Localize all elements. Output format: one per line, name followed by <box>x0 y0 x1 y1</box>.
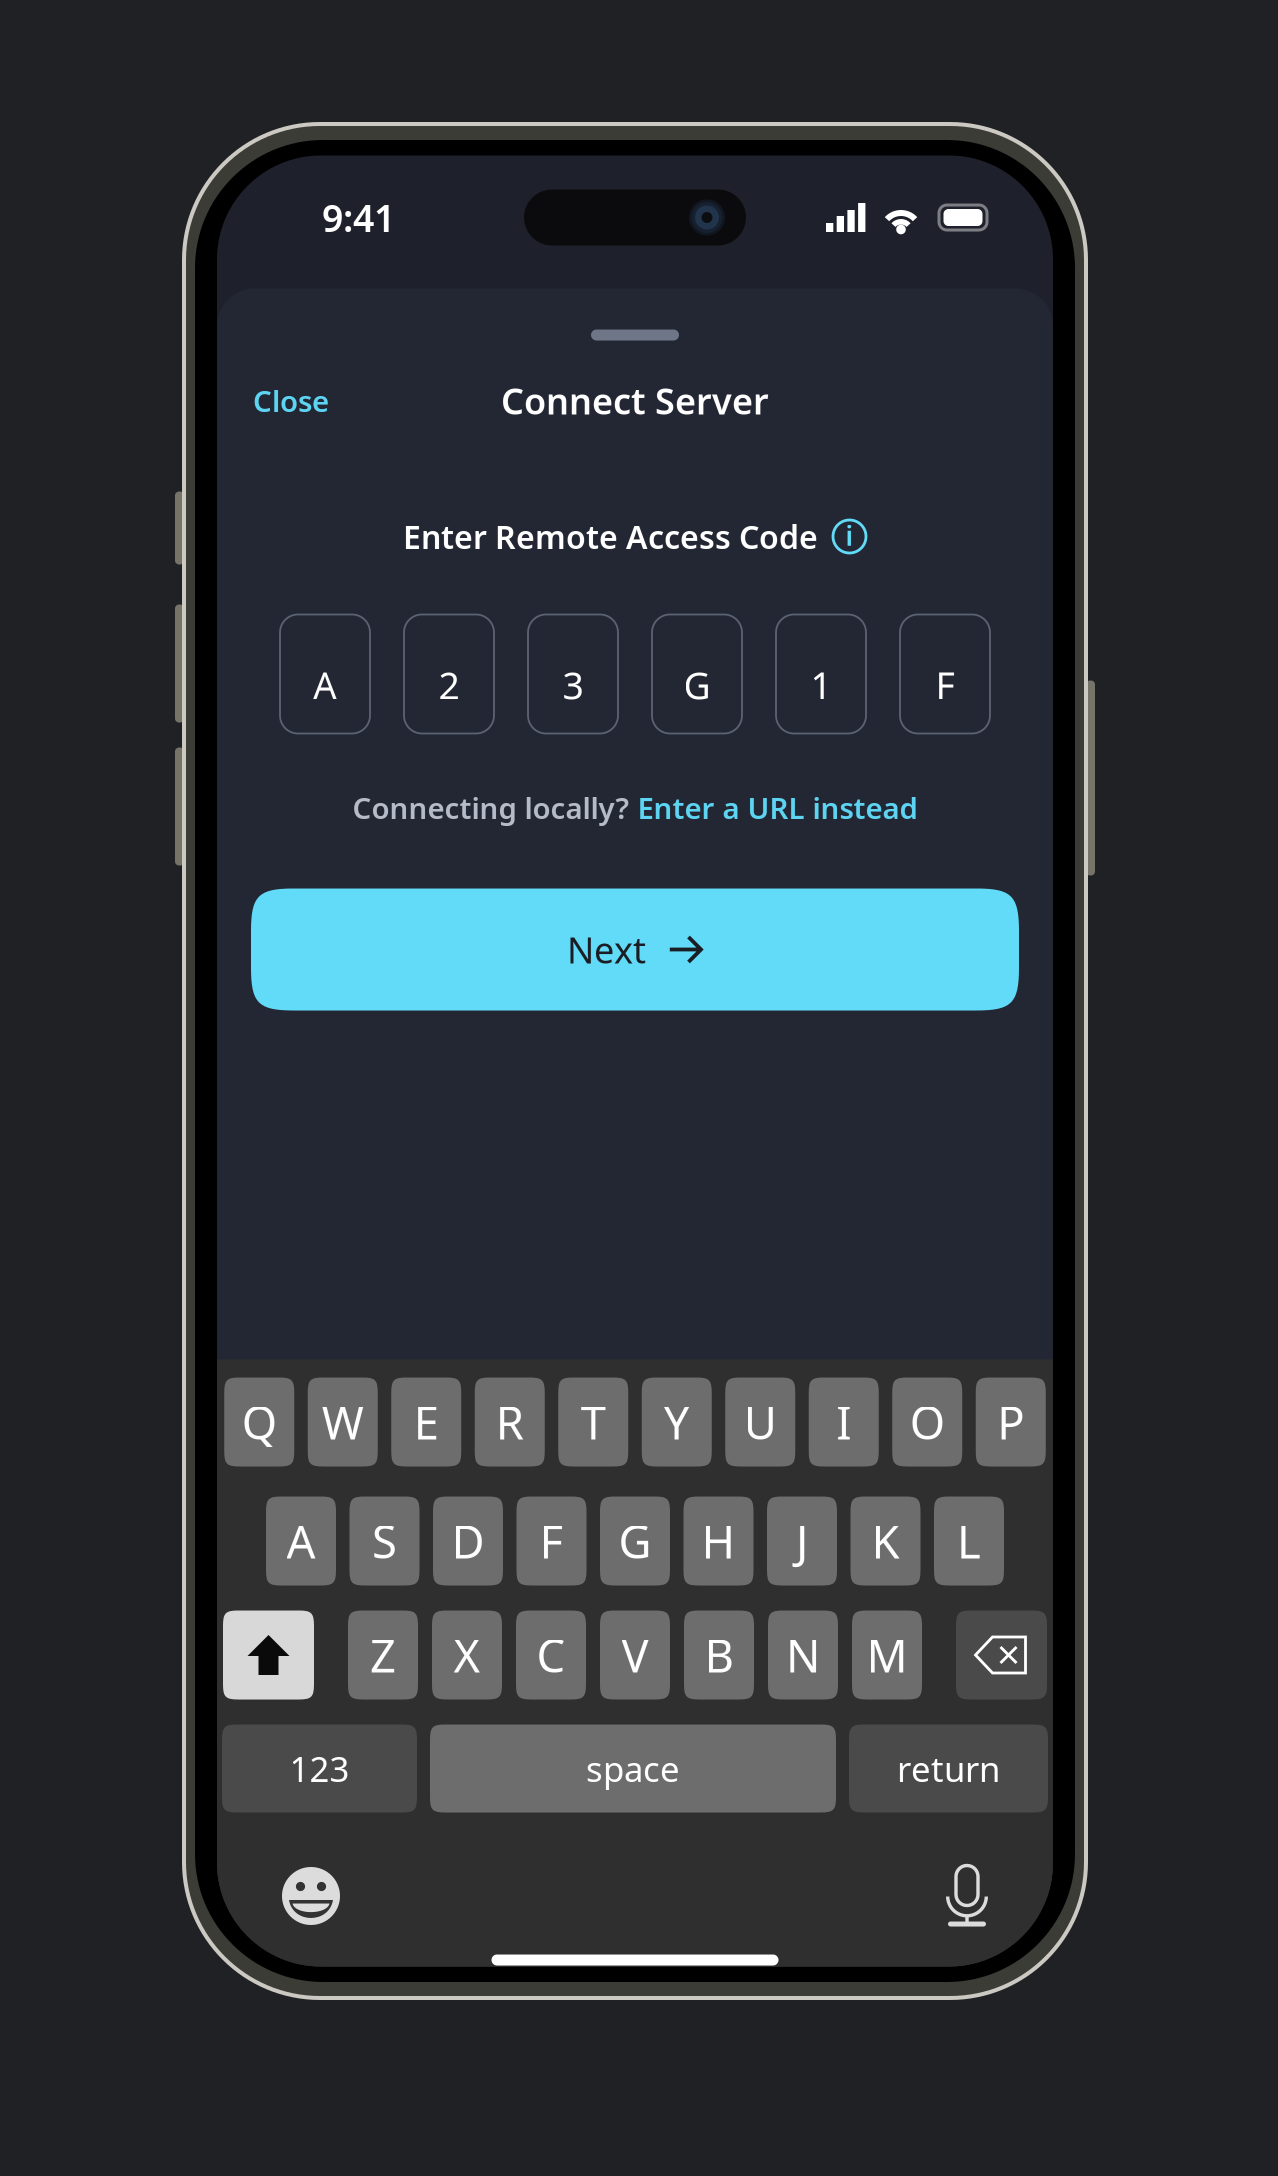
button[interactable]: E <box>391 1377 461 1466</box>
button[interactable]: Close <box>253 381 329 420</box>
staticText: space <box>586 1745 680 1791</box>
staticText: S <box>372 1511 397 1571</box>
button[interactable]: G <box>600 1496 670 1585</box>
staticText: V <box>621 1625 648 1685</box>
button[interactable]: Next <box>251 888 1019 1010</box>
button[interactable]: Y <box>642 1377 712 1466</box>
button[interactable]: D <box>433 1496 503 1585</box>
staticText: G <box>618 1511 651 1571</box>
button[interactable]: Information <box>832 519 867 554</box>
button[interactable]: L <box>934 1496 1004 1585</box>
staticText: A <box>313 660 337 710</box>
staticText: return <box>897 1745 1000 1791</box>
staticText: N <box>786 1625 820 1685</box>
button[interactable]: P <box>976 1377 1046 1466</box>
button[interactable]: Dictation <box>946 1865 988 1926</box>
staticText: C <box>536 1625 565 1685</box>
staticText: F <box>539 1511 563 1571</box>
staticText: 9:41 <box>322 193 395 242</box>
staticText: Enter a URL instead <box>637 788 917 827</box>
button[interactable]: U <box>725 1377 795 1466</box>
button[interactable]: S <box>349 1496 419 1585</box>
staticText: A <box>286 1511 315 1571</box>
staticText: Q <box>242 1392 277 1452</box>
staticText: O <box>910 1392 945 1452</box>
button[interactable]: R <box>475 1377 545 1466</box>
button[interactable]: V <box>600 1610 670 1699</box>
staticText: I <box>836 1392 851 1452</box>
staticText: Enter Remote Access Code <box>403 515 818 558</box>
button[interactable]: M <box>852 1610 922 1699</box>
button[interactable]: F <box>516 1496 586 1585</box>
staticText: U <box>744 1392 777 1452</box>
staticText: F <box>935 660 954 710</box>
staticText: G <box>683 660 710 710</box>
button[interactable]: W <box>308 1377 378 1466</box>
staticText: 123 <box>289 1745 349 1791</box>
button[interactable]: H <box>683 1496 753 1585</box>
button[interactable]: O <box>892 1377 962 1466</box>
staticText: B <box>704 1625 733 1685</box>
staticText: 2 <box>438 660 459 710</box>
staticText: K <box>871 1511 899 1571</box>
button[interactable]: Shift <box>223 1610 314 1699</box>
staticText: Connecting locally? <box>352 788 637 827</box>
button[interactable]: return <box>849 1724 1048 1812</box>
staticText: 1 <box>810 660 831 710</box>
staticText: X <box>453 1625 480 1685</box>
button[interactable]: 123 <box>222 1724 417 1812</box>
button[interactable]: I <box>809 1377 879 1466</box>
button[interactable]: space <box>430 1724 836 1812</box>
staticText: P <box>997 1392 1024 1452</box>
staticText: T <box>581 1392 606 1452</box>
staticText: E <box>414 1392 439 1452</box>
staticText: W <box>322 1392 364 1452</box>
staticText: Z <box>370 1625 396 1685</box>
button[interactable]: B <box>684 1610 754 1699</box>
button[interactable]: K <box>850 1496 920 1585</box>
button[interactable]: Q <box>224 1377 294 1466</box>
button[interactable]: Delete <box>956 1610 1047 1699</box>
staticText: 3 <box>562 660 583 710</box>
staticText: H <box>701 1511 735 1571</box>
staticText: D <box>451 1511 484 1571</box>
button[interactable]: Z <box>348 1610 418 1699</box>
staticText: Connect Server <box>501 377 769 424</box>
button[interactable]: T <box>558 1377 628 1466</box>
staticText: R <box>496 1392 524 1452</box>
button[interactable]: Enter a URL instead <box>637 788 917 827</box>
staticText: L <box>957 1511 981 1571</box>
button[interactable]: N <box>768 1610 838 1699</box>
button[interactable]: A <box>266 1496 336 1585</box>
button[interactable]: C <box>516 1610 586 1699</box>
staticText: J <box>796 1511 808 1571</box>
button[interactable]: X <box>432 1610 502 1699</box>
staticText: M <box>866 1625 907 1685</box>
staticText: i <box>845 518 853 553</box>
staticText: Y <box>664 1392 690 1452</box>
staticText: Close <box>253 381 329 420</box>
staticText: Next <box>567 926 646 973</box>
button[interactable]: J <box>767 1496 837 1585</box>
button[interactable]: Emoji <box>282 1867 340 1925</box>
